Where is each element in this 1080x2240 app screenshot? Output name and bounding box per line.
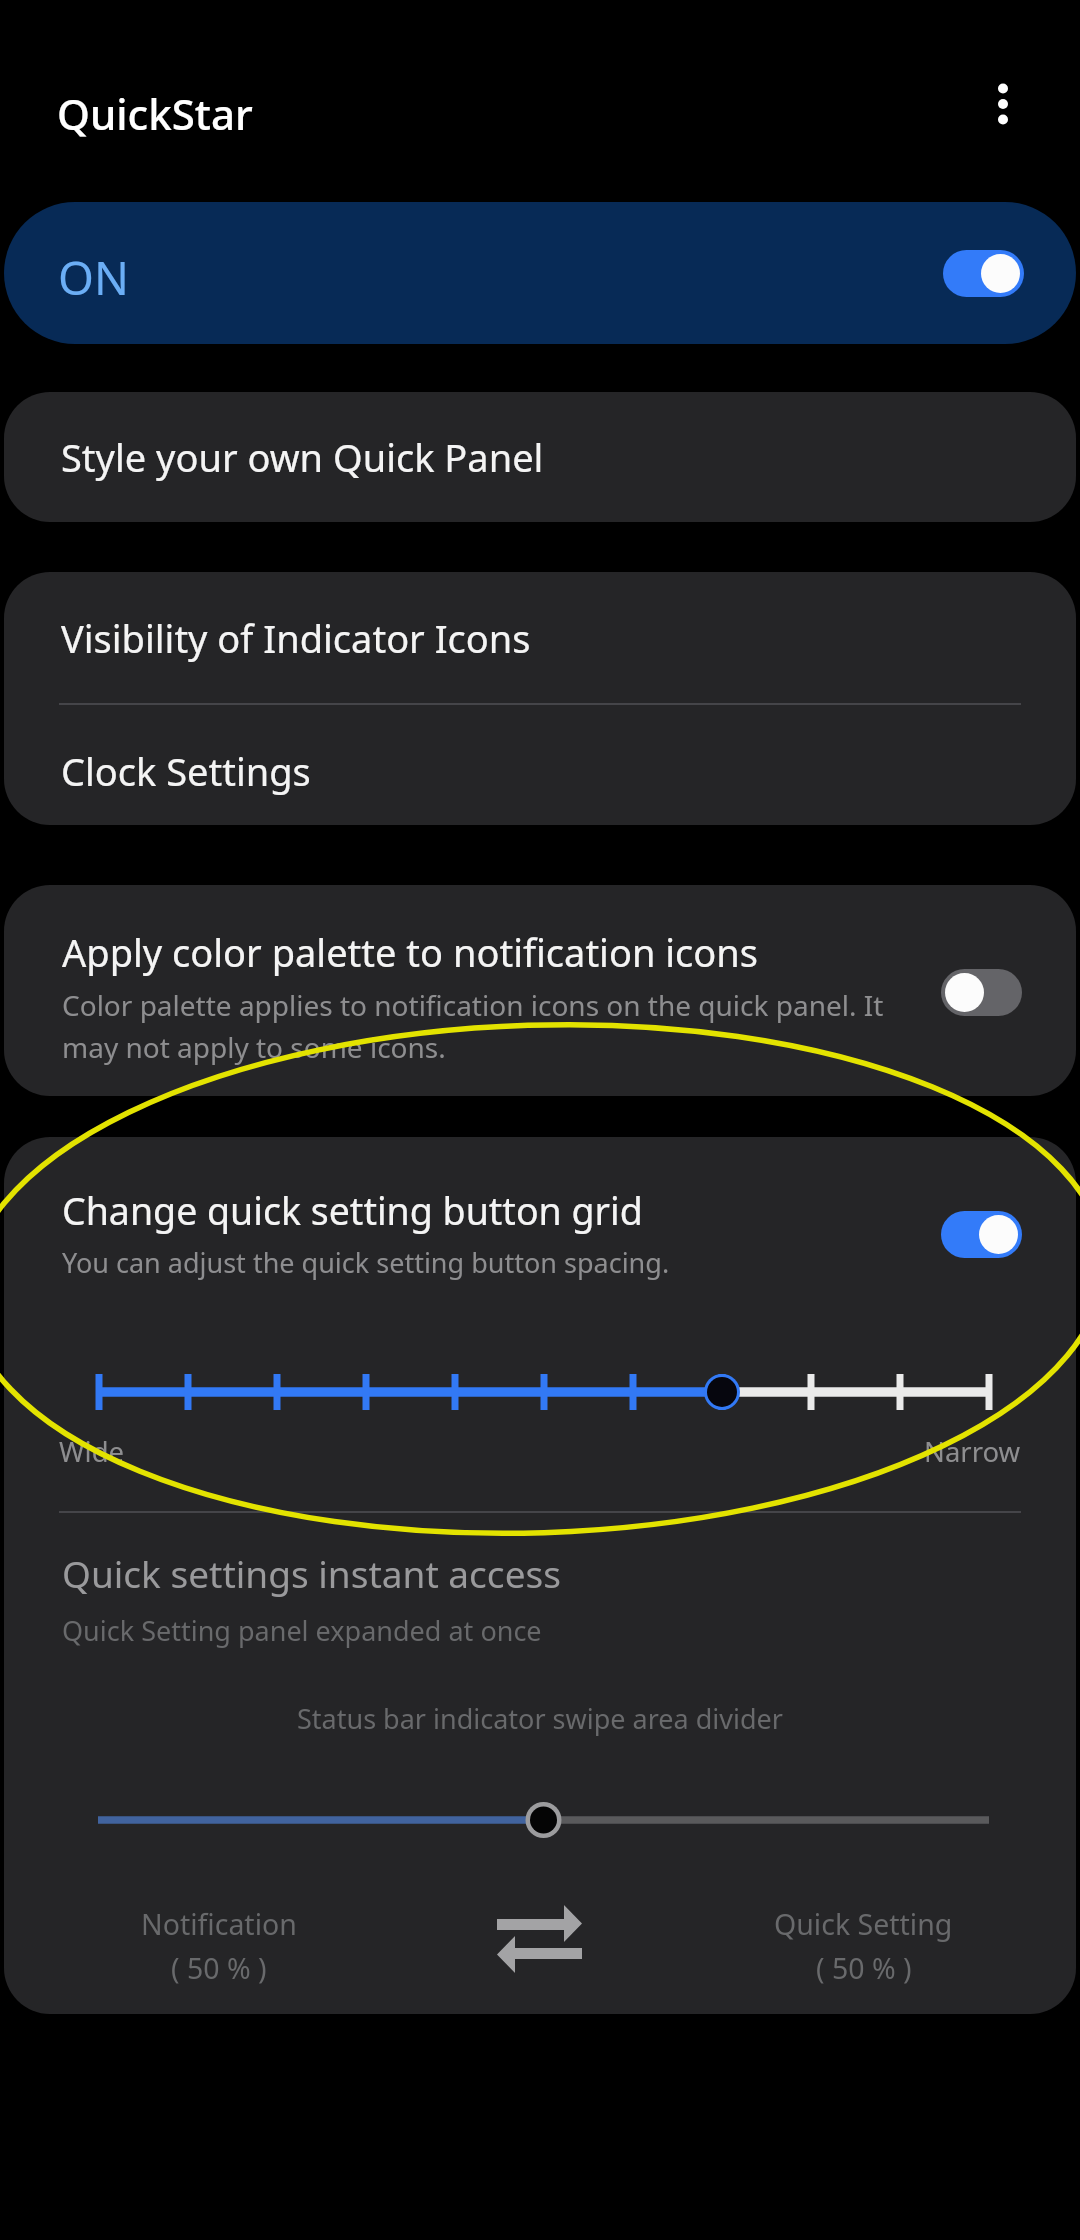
staticText: Narrow (924, 1433, 1021, 1470)
button[interactable]: Toggle on (941, 1211, 1022, 1258)
staticText: Quick Setting (774, 1905, 953, 1944)
staticText: Notification (141, 1905, 297, 1944)
button[interactable]: Swap notification and quick setting rati… (497, 1905, 582, 1973)
button[interactable]: Visibility of Indicator Icons (4, 572, 1076, 703)
staticText: Color palette applies to notification ic… (62, 986, 922, 1066)
staticText: Quick Setting panel expanded at once (62, 1612, 542, 1649)
staticText: Visibility of Indicator Icons (61, 612, 531, 664)
button[interactable]: Change quick setting button grid (4, 1137, 1076, 1327)
staticText: Clock Settings (61, 745, 311, 797)
staticText: Wide (59, 1433, 125, 1470)
staticText: Apply color palette to notification icon… (62, 926, 758, 978)
staticText: Quick settings instant access (62, 1548, 561, 1598)
button[interactable]: ON (4, 202, 1076, 344)
staticText: Change quick setting button grid (62, 1185, 643, 1236)
button[interactable]: Apply color palette to notification icon… (4, 885, 1076, 1096)
staticText: You can adjust the quick setting button … (62, 1244, 670, 1281)
staticText: ( 50 % ) (816, 1949, 912, 1988)
staticText: ( 50 % ) (171, 1949, 267, 1988)
staticText: Status bar indicator swipe area divider (4, 1700, 1076, 1737)
staticText: ON (58, 246, 129, 309)
staticText: Style your own Quick Panel (61, 431, 544, 483)
button[interactable]: Toggle on (943, 250, 1024, 297)
button[interactable]: Toggle off (941, 969, 1022, 1016)
staticText: QuickStar (57, 85, 253, 142)
button[interactable]: Swipe area divider slider (4, 1780, 1076, 1860)
button[interactable]: Style your own Quick Panel (4, 392, 1076, 522)
button[interactable]: More options (973, 74, 1033, 134)
button[interactable]: Grid spacing slider (4, 1352, 1076, 1442)
button[interactable]: Clock Settings (4, 705, 1076, 825)
